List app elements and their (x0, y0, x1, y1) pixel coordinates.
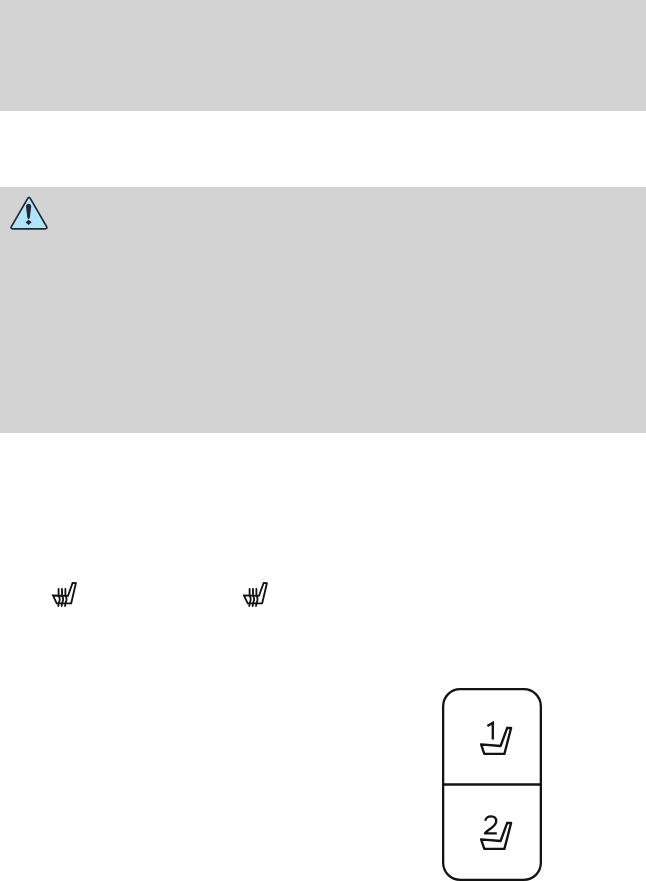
button[interactable]: Seat memory position 1 (443, 689, 541, 783)
button[interactable]: Warning notice (9, 195, 49, 230)
button[interactable]: Passenger seat heating (243, 582, 268, 606)
button[interactable]: Seat memory position 2 (443, 784, 541, 878)
button[interactable]: Driver seat heating (52, 582, 77, 606)
